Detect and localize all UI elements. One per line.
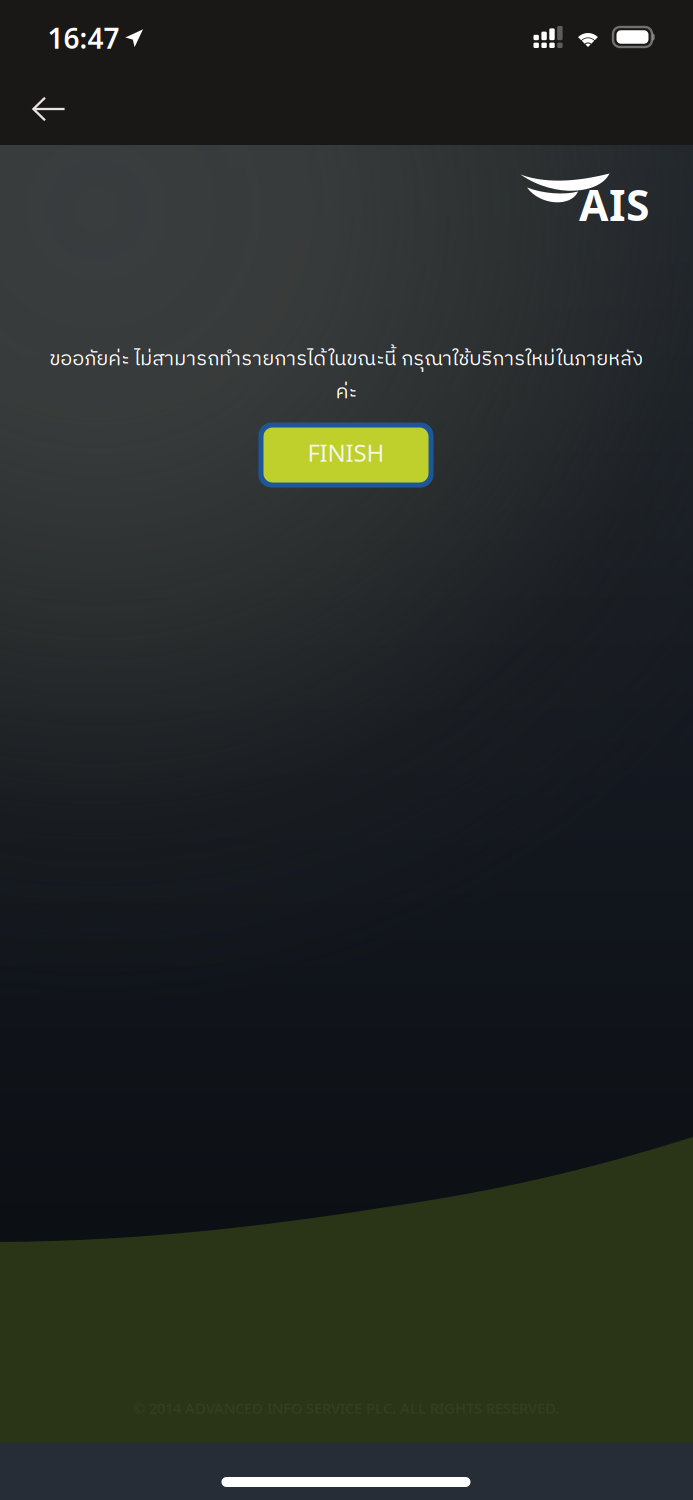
staticText: ขออภัยค่ะ ไม่สามารถทำรายการได้ในขณะนี้ ก… [49, 343, 643, 409]
staticText: 16:47 [47, 19, 119, 57]
button[interactable]: Back [11, 80, 87, 138]
staticText: © 2014 ADVANCED INFO SERVICE PLC. ALL RI… [133, 1398, 559, 1418]
button[interactable]: FINISH [258, 422, 433, 487]
staticText: AIS [579, 176, 650, 233]
staticText: FINISH [307, 437, 384, 468]
